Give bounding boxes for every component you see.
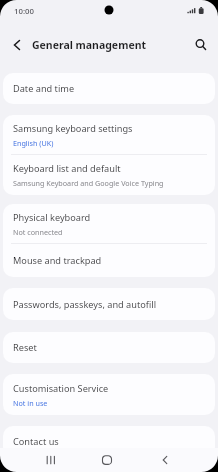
staticText: Physical keyboard [13,211,91,224]
button[interactable]: Physical keyboard [3,204,215,243]
staticText: Passwords, passkeys, and autofill [13,298,157,311]
staticText: Contact us [13,435,59,448]
staticText: Date and time [13,82,75,95]
button[interactable]: Customisation Service [3,374,215,415]
staticText: Reset [13,341,37,354]
staticText: General management [32,38,147,52]
button[interactable] [8,36,26,54]
button[interactable] [98,448,116,472]
staticText: English (UK) [13,138,54,148]
staticText: Not in use [13,398,48,408]
button[interactable]: Mouse and trackpad [3,244,215,277]
staticText: 10:00 [14,6,34,17]
button[interactable] [156,448,174,472]
button[interactable]: Date and time [3,73,215,104]
staticText: Samsung Keyboard and Google Voice Typing [13,178,164,188]
button[interactable] [42,448,60,472]
button[interactable]: Reset [3,332,215,363]
staticText: Not connected [13,227,63,237]
button[interactable]: Contact us [3,426,215,457]
button[interactable]: Samsung keyboard settings [3,115,215,154]
staticText: Mouse and trackpad [13,254,102,267]
button[interactable]: Keyboard list and default [3,155,215,195]
button[interactable] [192,36,210,54]
button[interactable]: Passwords, passkeys, and autofill [3,288,215,320]
staticText: Samsung keyboard settings [13,122,133,135]
staticText: Customisation Service [13,382,109,395]
staticText: Keyboard list and default [13,162,121,175]
